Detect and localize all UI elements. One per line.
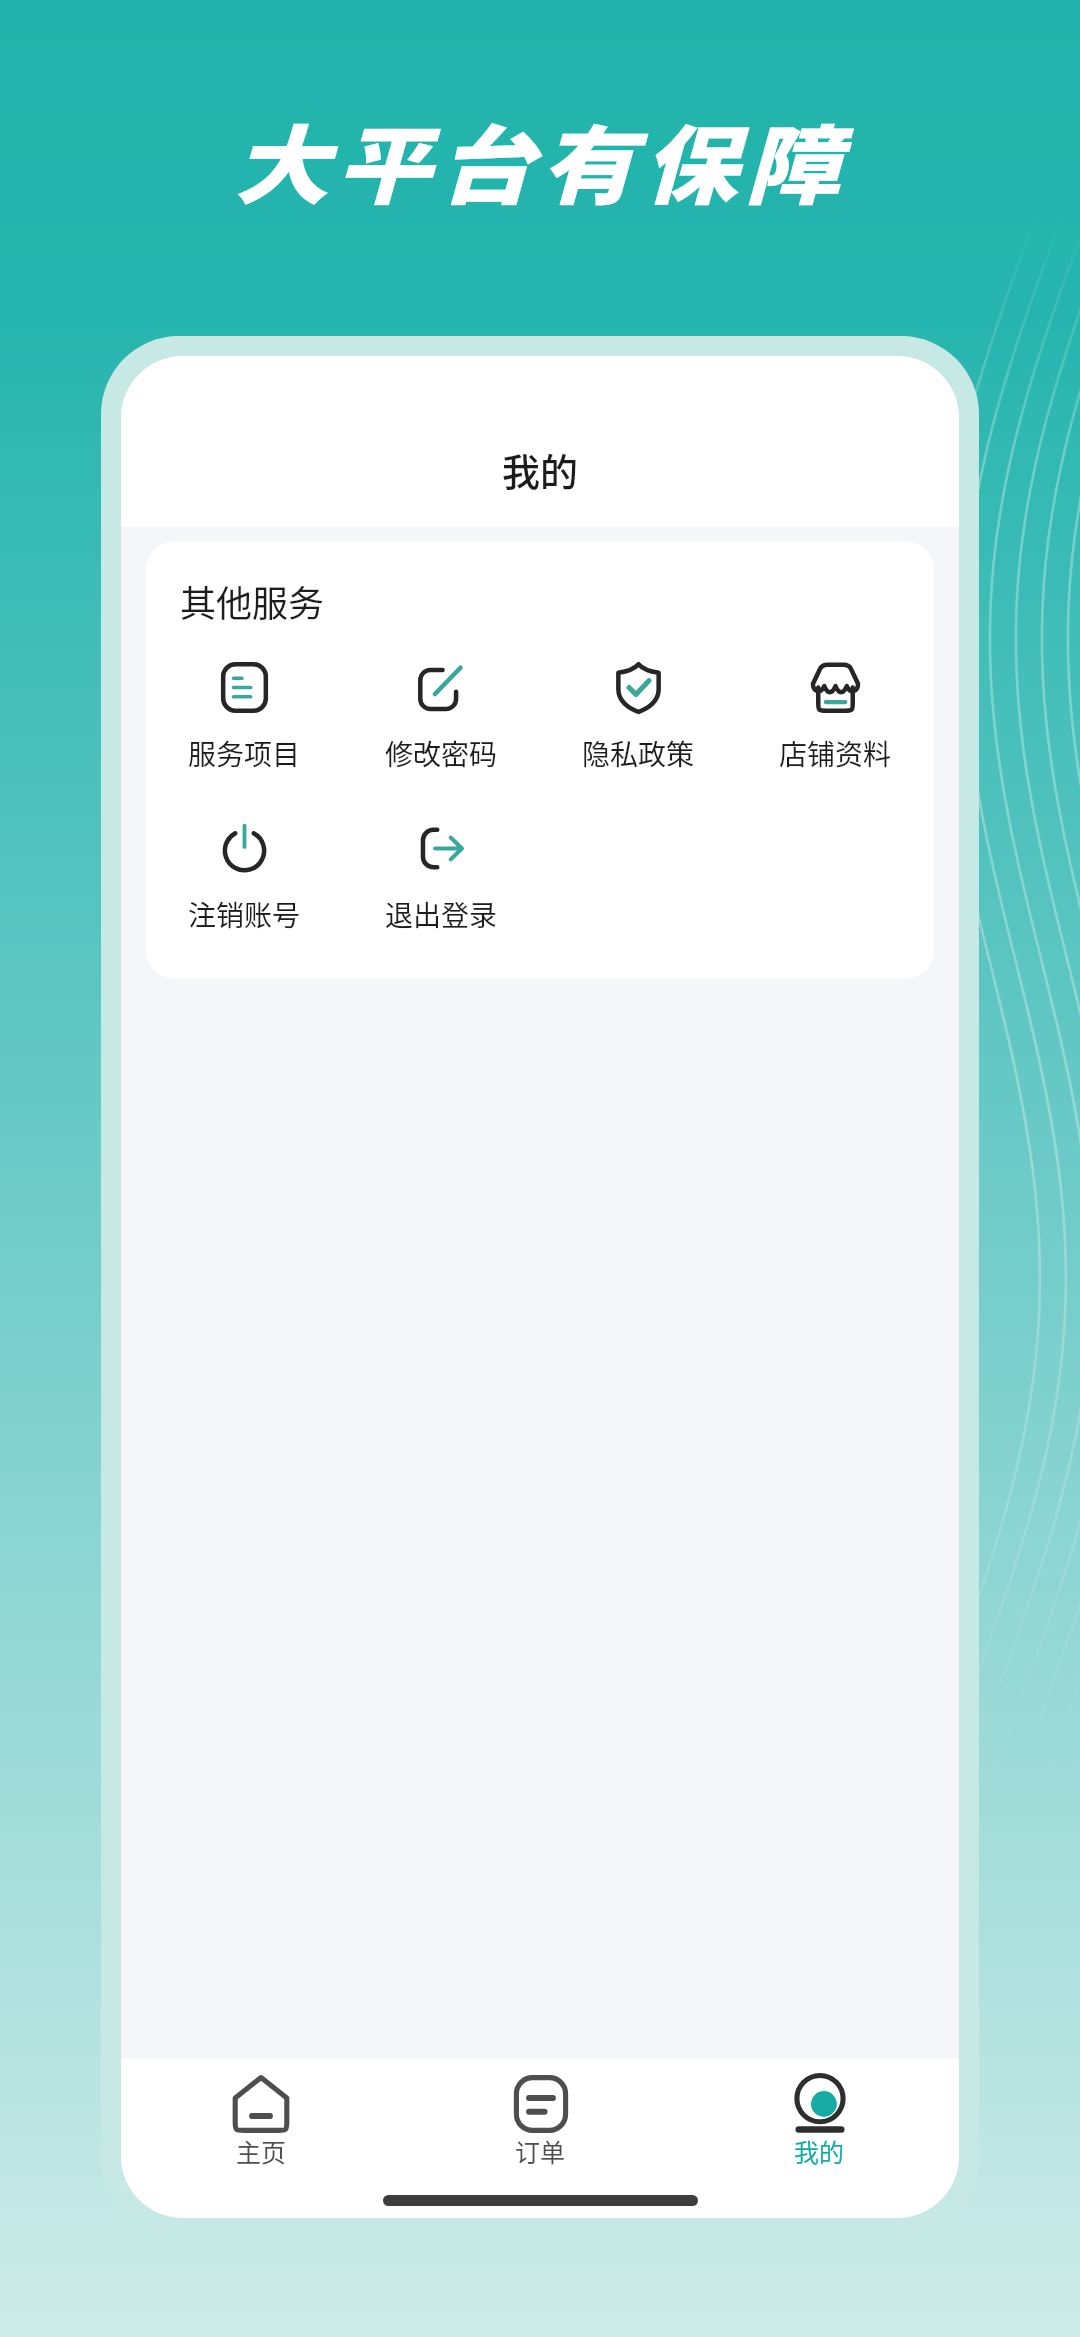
button[interactable]: 主页: [121, 2059, 401, 2183]
other: 我的: [790, 2074, 850, 2134]
staticText: 我的: [794, 2133, 845, 2169]
button[interactable]: 修改密码: [343, 661, 540, 774]
staticText: 店铺资料: [779, 733, 892, 774]
staticText: 大平台有保障: [234, 98, 847, 222]
button[interactable]: 注销账号: [146, 822, 343, 935]
staticText: 主页: [236, 2133, 287, 2169]
button[interactable]: 订单: [401, 2059, 680, 2183]
staticText: 服务项目: [188, 733, 301, 774]
staticText: 注销账号: [188, 894, 301, 935]
other: 订单: [511, 2074, 571, 2134]
staticText: 订单: [515, 2133, 566, 2169]
staticText: 隐私政策: [582, 733, 695, 774]
staticText: 我的: [502, 442, 579, 497]
staticText: 退出登录: [385, 894, 498, 935]
button[interactable]: 退出登录: [343, 822, 540, 935]
button[interactable]: 我的: [680, 2059, 959, 2183]
staticText: 其他服务: [180, 575, 325, 627]
other: 主页: [231, 2074, 291, 2134]
staticText: 修改密码: [385, 733, 498, 774]
button[interactable]: 店铺资料: [737, 661, 934, 774]
button[interactable]: 服务项目: [146, 661, 343, 774]
button[interactable]: 隐私政策: [540, 661, 737, 774]
